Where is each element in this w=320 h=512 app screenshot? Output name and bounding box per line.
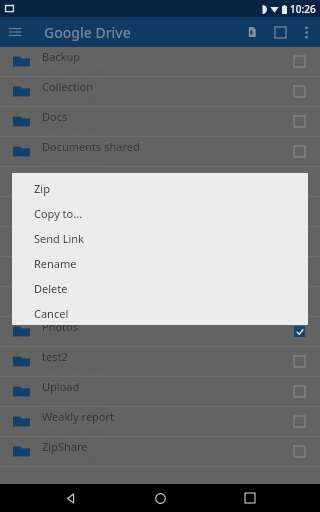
- button[interactable]: Recent apps: [230, 484, 270, 512]
- staticText: Weakly report: [42, 409, 115, 424]
- button[interactable]: Hidden1: [0, 167, 320, 197]
- staticText: Photos: [42, 319, 79, 334]
- button[interactable]: Select Photos: [284, 317, 314, 346]
- staticText: Hidden1: [42, 169, 86, 184]
- staticText: 2016-12-07 16:42: [42, 305, 103, 315]
- staticText: Upload: [42, 379, 80, 394]
- button[interactable]: Select Upload: [284, 377, 314, 406]
- staticText: Hidden4: [42, 259, 86, 274]
- button[interactable]: Hidden2: [0, 197, 320, 227]
- staticText: Documents shared: [42, 139, 140, 154]
- button[interactable]: Select Documents shared: [284, 137, 314, 166]
- button[interactable]: Open navigation drawer: [0, 17, 30, 47]
- button[interactable]: Cancel: [12, 301, 308, 325]
- staticText: Docs: [42, 109, 68, 124]
- button[interactable]: Select Hidden1: [284, 167, 314, 196]
- button[interactable]: Documents shared: [0, 137, 320, 167]
- staticText: Cancel: [34, 306, 69, 321]
- button[interactable]: Select Backup: [284, 47, 314, 76]
- staticText: 2016-12-07 16:40: [42, 185, 103, 195]
- staticText: Copy to...: [34, 206, 83, 221]
- button[interactable]: Upload: [0, 377, 320, 407]
- button[interactable]: Backup: [0, 47, 320, 77]
- button[interactable]: Home: [140, 484, 180, 512]
- button[interactable]: New document: [238, 18, 266, 46]
- button[interactable]: Select all: [266, 18, 294, 46]
- button[interactable]: Select Hidden4: [284, 257, 314, 286]
- button[interactable]: test2: [0, 347, 320, 377]
- button[interactable]: Docs: [0, 107, 320, 137]
- staticText: test2: [42, 349, 68, 364]
- button[interactable]: New plan: [0, 287, 320, 317]
- button[interactable]: Select Collection: [284, 77, 314, 106]
- staticText: Hidden3: [42, 229, 86, 244]
- button[interactable]: Delete: [12, 276, 308, 301]
- button[interactable]: Select Weakly report: [284, 407, 314, 436]
- staticText: Hidden2: [42, 199, 86, 214]
- button[interactable]: Rename: [12, 251, 308, 276]
- button[interactable]: More options: [294, 20, 318, 44]
- button[interactable]: Zip: [12, 176, 308, 201]
- button[interactable]: Hidden4: [0, 257, 320, 287]
- button[interactable]: ZipShare: [0, 437, 320, 467]
- button[interactable]: Send Link: [12, 226, 308, 251]
- staticText: Rename: [34, 256, 77, 271]
- button[interactable]: Select Docs: [284, 107, 314, 136]
- button[interactable]: Select New plan: [284, 287, 314, 316]
- button[interactable]: Select Hidden3: [284, 227, 314, 256]
- button[interactable]: Weakly report: [0, 407, 320, 437]
- staticText: 2016-12-07 16:40: [42, 215, 103, 225]
- staticText: Collection: [42, 79, 94, 94]
- button[interactable]: Collection: [0, 77, 320, 107]
- button[interactable]: Back: [50, 484, 90, 512]
- staticText: Backup: [42, 49, 81, 64]
- button[interactable]: Photos: [0, 317, 320, 347]
- button[interactable]: Hidden3: [0, 227, 320, 257]
- staticText: Zip: [34, 181, 50, 196]
- button[interactable]: Select ZipShare: [284, 437, 314, 466]
- staticText: Send Link: [34, 231, 84, 246]
- staticText: Google Drive: [44, 23, 131, 42]
- button[interactable]: Copy to...: [12, 201, 308, 226]
- staticText: Delete: [34, 281, 68, 296]
- button[interactable]: Select Hidden2: [284, 197, 314, 226]
- staticText: New plan: [42, 289, 91, 304]
- staticText: ZipShare: [42, 439, 88, 454]
- button[interactable]: Select test2: [284, 347, 314, 376]
- staticText: 10:26: [290, 2, 316, 16]
